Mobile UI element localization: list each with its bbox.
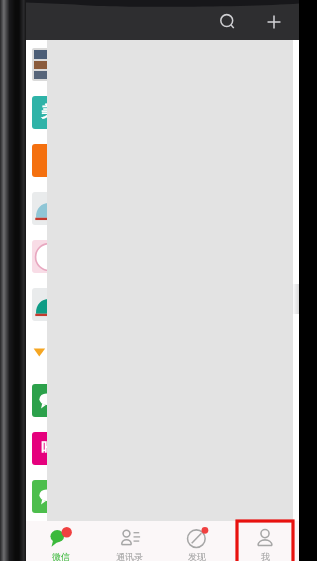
- button[interactable]: [26, 184, 299, 232]
- staticText: 发现: [188, 551, 206, 561]
- button[interactable]: [26, 328, 299, 376]
- button[interactable]: Search: [211, 5, 245, 39]
- button[interactable]: [26, 376, 299, 424]
- staticText: 唯: [41, 439, 56, 458]
- button[interactable]: [26, 232, 299, 280]
- staticText: 微信: [52, 551, 70, 561]
- button[interactable]: Me: [231, 521, 299, 561]
- button[interactable]: Contacts: [95, 521, 163, 561]
- button[interactable]: [26, 40, 299, 88]
- button[interactable]: Chats: [26, 521, 95, 561]
- button[interactable]: 美: [26, 88, 299, 136]
- button[interactable]: Discover: [163, 521, 231, 561]
- button[interactable]: i: [26, 136, 299, 184]
- button[interactable]: [26, 280, 299, 328]
- staticText: 美: [41, 103, 56, 122]
- button[interactable]: 唯: [26, 424, 299, 472]
- button[interactable]: Add: [257, 5, 291, 39]
- staticText: i: [46, 151, 51, 171]
- staticText: 通讯录: [116, 551, 143, 561]
- button[interactable]: [26, 472, 299, 520]
- staticText: 我: [261, 551, 270, 561]
